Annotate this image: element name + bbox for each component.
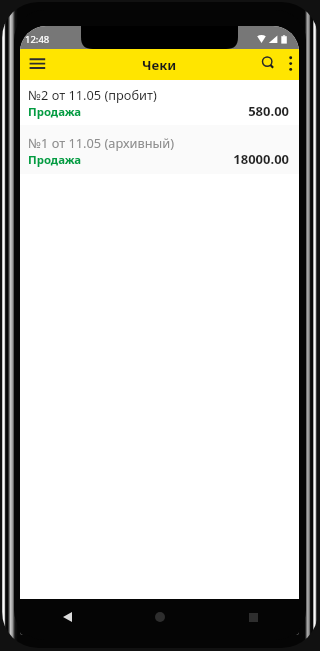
staticText: 580.00 (248, 102, 289, 120)
staticText: Продажа (28, 104, 82, 120)
button[interactable]: Home (145, 602, 175, 632)
button[interactable]: Back (52, 602, 82, 632)
staticText: №1 от 11.05 (архивный) (28, 134, 175, 151)
button[interactable]: №1 от 11.05 (архивный) (20, 125, 299, 174)
button[interactable]: Recents (238, 602, 268, 632)
staticText: Продажа (28, 152, 82, 168)
staticText: 18000.00 (233, 150, 289, 168)
button[interactable]: Menu (20, 49, 51, 80)
button[interactable]: Search (252, 49, 282, 80)
staticText: Чеки (142, 56, 177, 74)
button[interactable]: More options (279, 49, 299, 80)
staticText: №2 от 11.05 (пробит) (28, 86, 157, 103)
button[interactable]: №2 от 11.05 (пробит) (20, 80, 299, 125)
staticText: 12:48 (25, 33, 50, 46)
